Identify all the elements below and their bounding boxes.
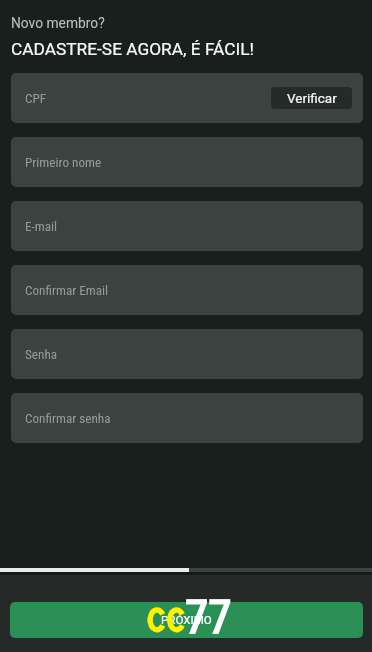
button[interactable]: Verificar bbox=[271, 87, 352, 109]
staticText: CADASTRE-SE AGORA, É FÁCIL! bbox=[11, 39, 254, 59]
button[interactable]: Confirmar Email bbox=[11, 265, 363, 315]
staticText: 77 bbox=[185, 589, 232, 644]
staticText: Senha bbox=[25, 347, 58, 362]
staticText: Confirmar senha bbox=[25, 411, 111, 426]
staticText: Confirmar Email bbox=[25, 283, 109, 298]
button[interactable]: Senha bbox=[11, 329, 363, 379]
button[interactable]: Primeiro nome bbox=[11, 137, 363, 187]
staticText: Primeiro nome bbox=[25, 155, 102, 170]
button[interactable]: E-mail bbox=[11, 201, 363, 251]
staticText: Novo membro? bbox=[11, 15, 105, 31]
staticText: PRÓXIMO bbox=[161, 613, 212, 627]
button[interactable]: Confirmar senha bbox=[11, 393, 363, 443]
button[interactable]: PRÓXIMO bbox=[10, 602, 363, 638]
staticText: Verificar bbox=[287, 90, 337, 106]
staticText: CPF bbox=[25, 91, 47, 106]
button[interactable]: CPF bbox=[11, 73, 363, 123]
staticText: E-mail bbox=[25, 219, 58, 234]
